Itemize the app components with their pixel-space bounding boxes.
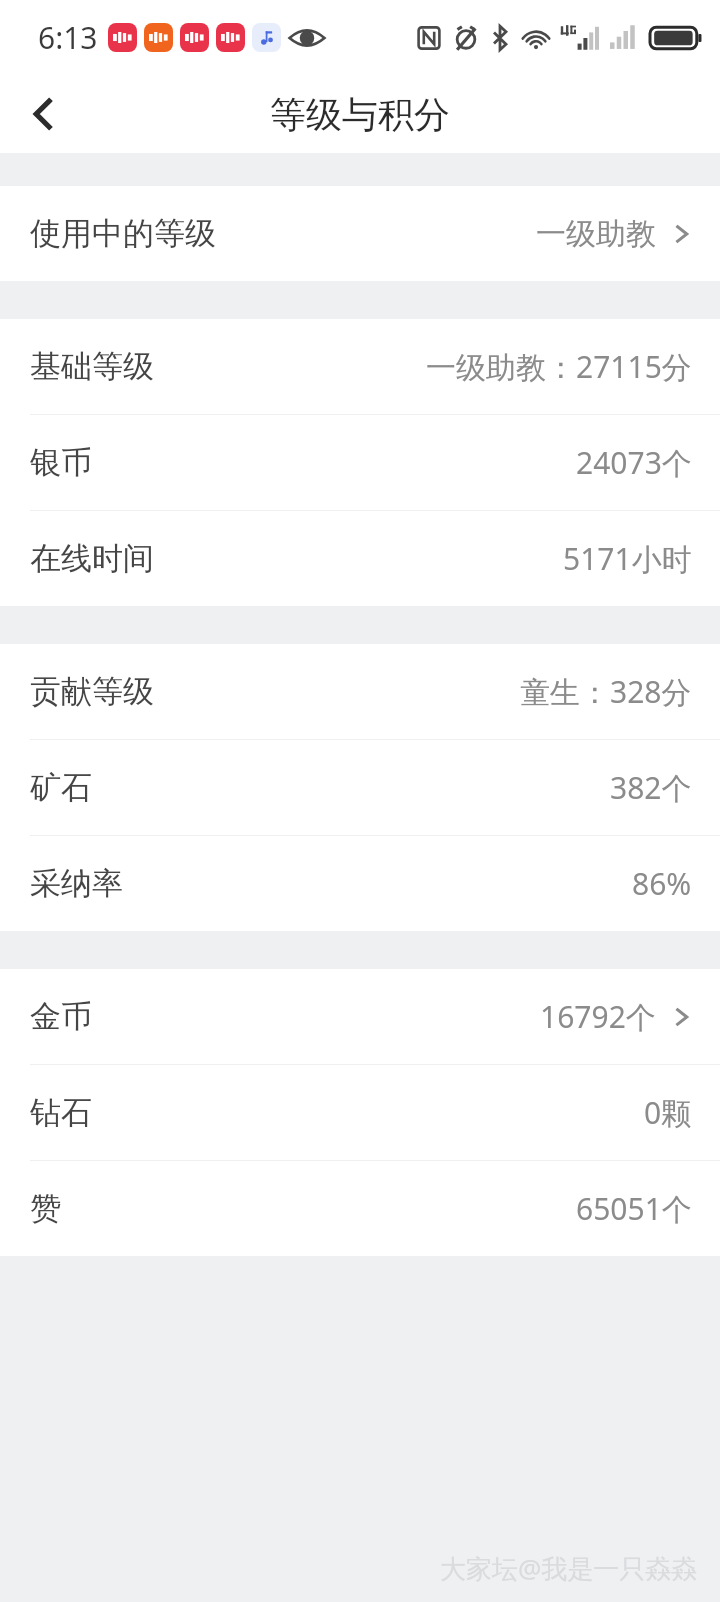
button[interactable]: 矿石 [0,740,720,835]
staticText: 65051个 [576,1188,692,1229]
staticText: 382个 [610,767,692,808]
staticText: 赞 [30,1189,61,1228]
staticText: 16792个 [540,996,656,1037]
button[interactable]: 钻石 [0,1065,720,1160]
staticText: 一级助教：27115分 [426,346,692,387]
staticText: 在线时间 [30,539,154,578]
staticText: 等级与积分 [270,92,450,137]
button[interactable]: 金币 [0,969,720,1064]
button[interactable]: Back [14,85,72,143]
staticText: 86% [632,863,692,904]
button[interactable]: 采纳率 [0,836,720,931]
button[interactable]: 银币 [0,415,720,510]
staticText: 矿石 [30,768,92,807]
staticText: 贡献等级 [30,672,154,711]
button[interactable]: 基础等级 [0,319,720,414]
staticText: 童生：328分 [520,671,692,712]
staticText: 银币 [30,443,92,482]
staticText: 6:13 [38,17,98,58]
button[interactable]: 赞 [0,1161,720,1256]
staticText: 钻石 [30,1093,92,1132]
staticText: 基础等级 [30,347,154,386]
staticText: 使用中的等级 [30,214,216,253]
staticText: 金币 [30,997,92,1036]
button[interactable]: 使用中的等级 [0,186,720,281]
staticText: 24073个 [576,442,692,483]
button[interactable]: 贡献等级 [0,644,720,739]
staticText: 一级助教 [536,215,656,253]
staticText: 5171小时 [563,538,692,579]
staticText: 采纳率 [30,864,123,903]
button[interactable]: 在线时间 [0,511,720,606]
staticText: 大家坛@我是一只猋猋 [440,1550,698,1586]
staticText: 0颗 [644,1092,692,1133]
